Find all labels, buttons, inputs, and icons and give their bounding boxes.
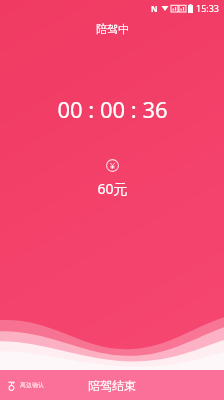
staticText: N xyxy=(151,3,158,14)
staticText: 00 : 00 : 36 xyxy=(57,94,168,124)
staticText: 离边确认 xyxy=(20,381,44,389)
staticText: 陪驾中 xyxy=(96,22,129,36)
staticText: 60元 xyxy=(97,179,128,198)
staticText: 陪驾结束 xyxy=(88,378,136,393)
staticText: 15:33 xyxy=(196,2,220,14)
button[interactable]: 陪驾结束 xyxy=(66,370,158,400)
button[interactable]: 离边确认 xyxy=(0,370,66,400)
